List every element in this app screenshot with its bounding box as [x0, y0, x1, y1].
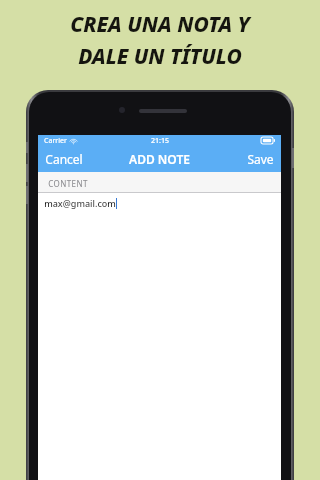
button[interactable]: Save — [240, 147, 281, 171]
staticText: CREA UNA NOTA Y — [70, 10, 250, 39]
staticText: Cancel — [45, 151, 83, 167]
staticText: Carrier — [44, 136, 67, 146]
staticText: Save — [247, 151, 274, 167]
other: Battery — [261, 137, 275, 144]
staticText: 21:15 — [151, 136, 169, 146]
staticText: max@gmail.com — [44, 197, 116, 209]
button[interactable]: Cancel — [38, 147, 90, 171]
button[interactable]: max@gmail.com — [38, 193, 281, 480]
other: Wi-Fi — [70, 138, 77, 145]
staticText: DALE UN TÍTULO — [78, 42, 242, 71]
staticText: CONTENT — [48, 178, 88, 189]
staticText: ADD NOTE — [129, 151, 190, 167]
